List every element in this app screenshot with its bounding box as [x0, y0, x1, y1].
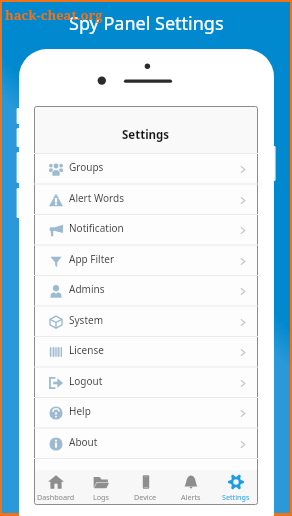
- staticText: Groups: [69, 160, 104, 174]
- staticText: System: [69, 313, 103, 327]
- staticText: Spy Panel Settings: [69, 11, 224, 36]
- staticText: License: [69, 343, 104, 357]
- button[interactable]: Logout: [34, 368, 258, 398]
- button[interactable]: Groups: [34, 154, 258, 184]
- button[interactable]: Notification: [34, 215, 258, 245]
- staticText: About: [69, 435, 98, 449]
- staticText: Settings: [122, 127, 170, 143]
- staticText: Logs: [93, 492, 109, 502]
- button[interactable]: Logs: [78, 470, 123, 505]
- button[interactable]: Settings: [213, 470, 258, 505]
- button[interactable]: Dashboard: [34, 470, 78, 505]
- staticText: Help: [69, 404, 91, 418]
- staticText: Alert Words: [69, 191, 124, 205]
- staticText: Alerts: [181, 492, 201, 502]
- button[interactable]: License: [34, 337, 258, 367]
- button[interactable]: Alert Words: [34, 185, 258, 215]
- button[interactable]: System: [34, 307, 258, 337]
- button[interactable]: Device: [123, 470, 168, 505]
- staticText: Admins: [69, 282, 105, 296]
- button[interactable]: Help: [34, 398, 258, 428]
- staticText: Notification: [69, 221, 124, 235]
- staticText: App Filter: [69, 252, 115, 266]
- staticText: Dashboard: [37, 492, 75, 502]
- button[interactable]: Alerts: [168, 470, 213, 505]
- button[interactable]: About: [34, 429, 258, 459]
- button[interactable]: App Filter: [34, 246, 258, 276]
- staticText: Logout: [69, 374, 103, 388]
- staticText: Settings: [222, 492, 250, 502]
- button[interactable]: Admins: [34, 276, 258, 306]
- staticText: Device: [134, 492, 157, 502]
- staticText: hack-cheat.org: [5, 6, 103, 24]
